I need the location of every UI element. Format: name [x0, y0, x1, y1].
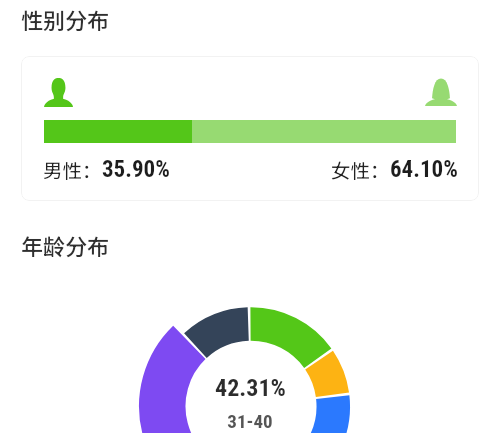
staticText: 64.10%: [390, 156, 458, 183]
staticText: 31-40: [227, 410, 273, 432]
button[interactable]: Male: [21, 56, 479, 201]
other: Male: [44, 78, 73, 107]
staticText: 42.31%: [215, 374, 286, 402]
staticText: 年龄分布: [21, 229, 110, 261]
staticText: 35.90%: [102, 156, 170, 183]
staticText: 性别分布: [21, 3, 110, 35]
other: Female: [425, 78, 457, 106]
staticText: 男性：: [43, 155, 102, 183]
staticText: 女性：: [331, 155, 390, 183]
